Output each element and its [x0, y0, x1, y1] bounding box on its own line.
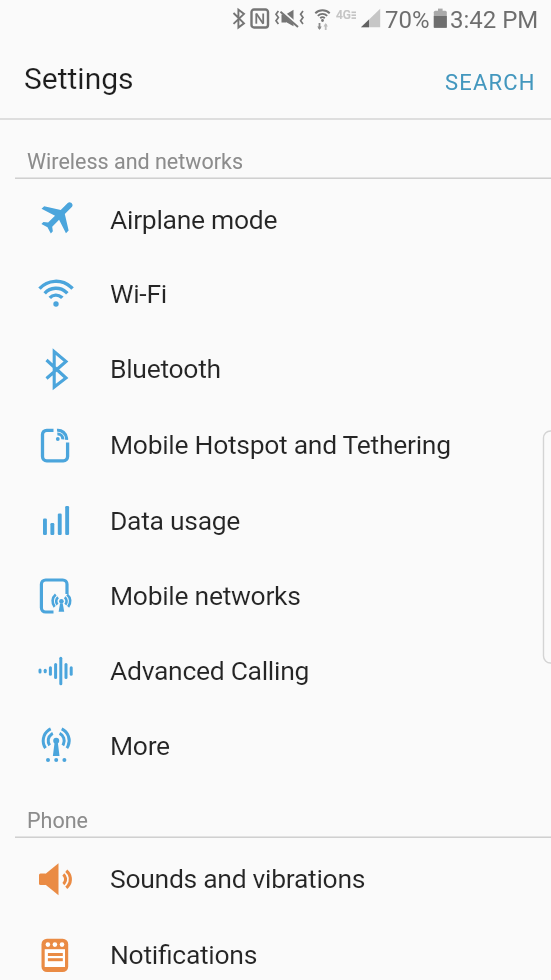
staticText: Bluetooth	[110, 353, 221, 384]
staticText: SEARCH	[445, 70, 536, 96]
staticText: Mobile Hotspot and Tethering	[110, 429, 451, 460]
button[interactable]: Sounds and vibrations	[0, 841, 551, 916]
button[interactable]: Bluetooth	[0, 331, 551, 406]
staticText: 4G	[336, 8, 351, 22]
button[interactable]: Advanced Calling	[0, 633, 551, 708]
staticText: Settings	[24, 61, 134, 96]
button[interactable]: Notifications	[0, 917, 551, 980]
button[interactable]: Mobile Hotspot and Tethering	[0, 407, 551, 482]
staticText: Phone	[27, 808, 88, 833]
staticText: Sounds and vibrations	[110, 863, 366, 894]
staticText: Notifications	[110, 939, 258, 970]
staticText: Wireless and networks	[27, 149, 243, 174]
button[interactable]: Data usage	[0, 483, 551, 558]
button[interactable]: More	[0, 708, 551, 783]
staticText: Airplane mode	[110, 204, 278, 235]
staticText: Advanced Calling	[110, 655, 310, 686]
staticText: Wi-Fi	[110, 278, 167, 309]
button[interactable]: Mobile networks	[0, 558, 551, 633]
button[interactable]: SEARCH	[430, 66, 521, 100]
staticText: Mobile networks	[110, 580, 301, 611]
button[interactable]: Wi-Fi	[0, 256, 551, 331]
staticText: 70%	[385, 6, 430, 34]
staticText: More	[110, 730, 170, 761]
staticText: 3:42 PM	[450, 6, 539, 34]
button[interactable]: Airplane mode	[0, 182, 551, 257]
staticText: Data usage	[110, 505, 241, 536]
